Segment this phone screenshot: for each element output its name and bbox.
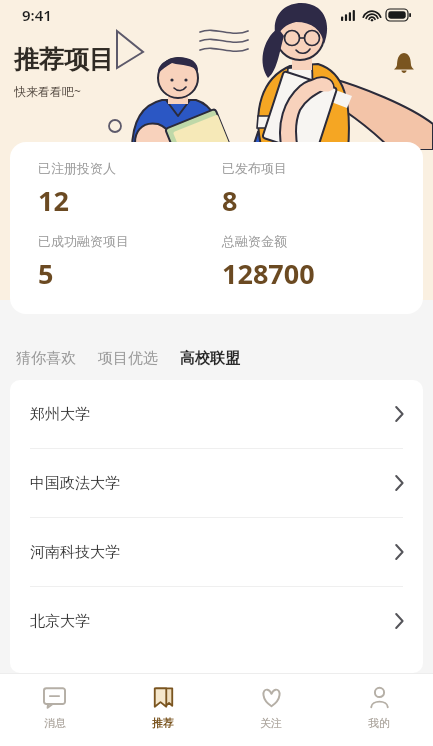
staticText: 猜你喜欢 [16, 349, 76, 368]
button[interactable]: Notifications [387, 46, 421, 80]
staticText: 已注册投资人 [38, 160, 116, 176]
staticText: 消息 [44, 716, 66, 730]
staticText: 关注 [260, 716, 282, 730]
staticText: 河南科技大学 [30, 543, 120, 562]
staticText: 推荐 [152, 716, 174, 730]
button[interactable]: 我的 [325, 674, 433, 746]
button[interactable]: 河南科技大学 [10, 518, 423, 586]
button[interactable]: 项目优选 [96, 345, 160, 372]
staticText: 12 [38, 182, 69, 219]
button[interactable]: 猜你喜欢 [14, 345, 78, 372]
staticText: 高校联盟 [180, 349, 240, 368]
staticText: 9:41 [22, 5, 52, 25]
staticText: 我的 [368, 716, 390, 730]
staticText: 中国政法大学 [30, 474, 120, 493]
button[interactable]: 北京大学 [10, 587, 423, 655]
staticText: 5 [38, 255, 54, 292]
staticText: 北京大学 [30, 612, 90, 631]
staticText: 项目优选 [98, 349, 158, 368]
button[interactable]: 推荐 [109, 674, 217, 746]
staticText: 8 [222, 182, 238, 219]
staticText: 总融资金额 [222, 233, 287, 249]
button[interactable]: 高校联盟 [178, 345, 242, 372]
staticText: 已成功融资项目 [38, 233, 129, 249]
button[interactable]: 消息 [0, 674, 109, 746]
staticText: 推荐项目 [14, 44, 114, 75]
staticText: 已发布项目 [222, 160, 287, 176]
button[interactable]: 中国政法大学 [10, 449, 423, 517]
button[interactable]: 郑州大学 [10, 380, 423, 448]
staticText: 郑州大学 [30, 405, 90, 424]
staticText: 128700 [222, 255, 315, 292]
button[interactable]: 关注 [217, 674, 325, 746]
staticText: 快来看看吧~ [14, 83, 81, 99]
